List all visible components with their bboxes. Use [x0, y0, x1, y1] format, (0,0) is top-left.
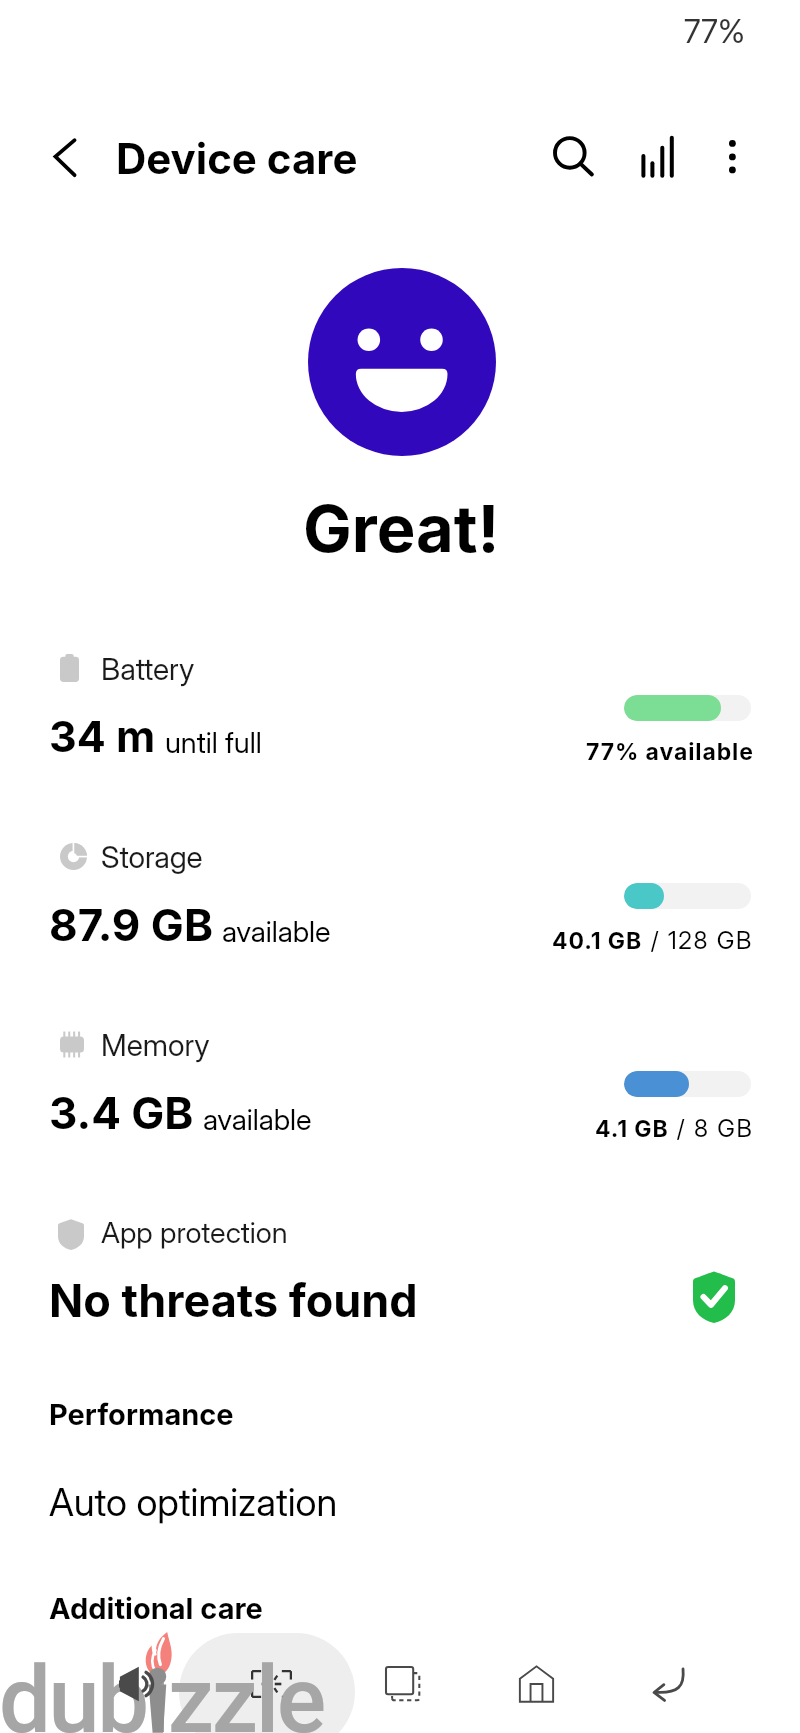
staticText: dubizzle [0, 1647, 324, 1733]
staticText: available [203, 1102, 312, 1137]
staticText: Additional care [49, 1591, 263, 1626]
staticText: 87.9 GB [49, 898, 213, 951]
staticText: / 8 GB [669, 1114, 754, 1143]
button[interactable]: Search [548, 131, 600, 183]
button[interactable] [0, 1205, 800, 1333]
button[interactable]: Usage statistics [630, 128, 682, 180]
staticText: 40.1 GB [552, 927, 643, 955]
staticText: 77% available [586, 738, 754, 766]
staticText: until full [165, 725, 262, 760]
staticText: App protection [101, 1215, 288, 1250]
staticText: 34 m [49, 710, 156, 762]
staticText: 4.1 GB [595, 1115, 669, 1143]
staticText: Performance [49, 1397, 234, 1432]
staticText: available [222, 914, 331, 949]
staticText: Memory [101, 1027, 210, 1063]
staticText: Battery [101, 651, 195, 687]
staticText: 3.4 GB [49, 1086, 194, 1139]
button[interactable] [0, 1024, 800, 1152]
button[interactable]: Back [610, 1643, 730, 1733]
button[interactable] [0, 1462, 800, 1544]
button[interactable] [0, 648, 800, 776]
button[interactable]: More options [708, 130, 758, 180]
staticText: 77% [684, 12, 745, 51]
staticText: / 128 GB [643, 926, 754, 955]
button[interactable]: Home [477, 1643, 597, 1733]
staticText: Auto optimization [49, 1479, 338, 1525]
button[interactable] [0, 836, 800, 964]
staticText: No threats found [49, 1273, 418, 1327]
button[interactable]: Navigate up [38, 130, 90, 182]
button[interactable]: Recent apps [344, 1643, 464, 1733]
staticText: Great! [303, 489, 500, 568]
staticText: Device care [116, 133, 358, 184]
staticText: Storage [101, 839, 203, 875]
